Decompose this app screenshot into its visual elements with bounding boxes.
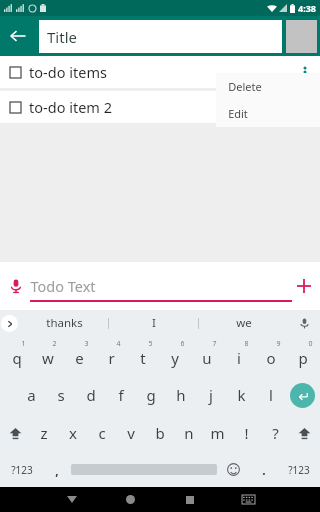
- button[interactable]: Voice input: [2, 272, 30, 300]
- button[interactable]: g: [136, 376, 166, 414]
- button[interactable]: Add todo: [290, 272, 318, 300]
- staticText: Todo Text: [30, 276, 96, 296]
- staticText: r: [108, 348, 115, 368]
- button[interactable]: !: [232, 414, 261, 452]
- staticText: e: [75, 348, 84, 368]
- staticText: ,: [55, 462, 59, 478]
- button[interactable]: I: [109, 310, 198, 336]
- button[interactable]: Title: [39, 20, 282, 53]
- button[interactable]: 2: [32, 336, 63, 376]
- button[interactable]: x: [58, 414, 87, 452]
- button[interactable]: Emoji: [217, 452, 249, 487]
- button[interactable]: k: [226, 376, 256, 414]
- staticText: q: [12, 348, 22, 368]
- staticText: 5: [148, 339, 153, 349]
- staticText: t: [140, 348, 146, 368]
- staticText: Delete: [228, 79, 262, 94]
- button[interactable]: Expand suggestions: [1, 315, 18, 332]
- button[interactable]: ?123: [1, 452, 42, 487]
- staticText: c: [98, 423, 106, 443]
- staticText: 0: [308, 339, 313, 349]
- staticText: b: [155, 423, 165, 443]
- button[interactable]: Shift: [290, 414, 319, 452]
- staticText: !: [244, 423, 249, 443]
- button[interactable]: Enter: [286, 376, 319, 414]
- staticText: we: [236, 315, 252, 331]
- button[interactable]: a: [16, 376, 46, 414]
- button[interactable]: we: [199, 310, 288, 336]
- button[interactable]: Space: [71, 452, 217, 487]
- button[interactable]: ?: [261, 414, 290, 452]
- button[interactable]: 4: [95, 336, 127, 376]
- button[interactable]: .: [249, 452, 278, 487]
- staticText: I: [152, 315, 156, 331]
- staticText: z: [40, 423, 48, 443]
- staticText: ?123: [288, 463, 310, 477]
- staticText: 3: [84, 339, 89, 349]
- button[interactable]: m: [203, 414, 232, 452]
- button[interactable]: d: [76, 376, 106, 414]
- button[interactable]: b: [145, 414, 174, 452]
- button[interactable]: 7: [191, 336, 223, 376]
- button[interactable]: 1: [1, 336, 32, 376]
- staticText: h: [176, 385, 186, 405]
- staticText: Title: [47, 27, 77, 47]
- button[interactable]: Back: [42, 487, 101, 512]
- staticText: u: [202, 348, 212, 368]
- button[interactable]: Recent apps: [160, 487, 219, 512]
- button[interactable]: thanks: [20, 310, 108, 336]
- staticText: ?: [272, 423, 279, 443]
- staticText: w: [42, 348, 54, 368]
- staticText: f: [118, 385, 124, 405]
- button[interactable]: h: [166, 376, 196, 414]
- staticText: 4: [116, 339, 121, 349]
- button[interactable]: c: [87, 414, 116, 452]
- staticText: 8: [244, 339, 249, 349]
- button[interactable]: Voice typing: [294, 313, 314, 333]
- button[interactable]: to-do item 2: [0, 91, 320, 123]
- button[interactable]: Delete: [216, 73, 320, 100]
- staticText: Edit: [228, 106, 248, 121]
- button[interactable]: ,: [42, 452, 71, 487]
- button[interactable]: z: [29, 414, 58, 452]
- staticText: to-do item 2: [29, 97, 112, 117]
- staticText: a: [27, 385, 36, 405]
- staticText: g: [146, 385, 156, 405]
- button[interactable]: Edit: [216, 100, 320, 127]
- staticText: l: [269, 385, 273, 405]
- button[interactable]: 8: [223, 336, 255, 376]
- button[interactable]: 9: [255, 336, 287, 376]
- staticText: s: [57, 385, 65, 405]
- staticText: to-do items: [29, 62, 107, 82]
- button[interactable]: Back: [0, 18, 36, 54]
- staticText: i: [237, 348, 241, 368]
- button[interactable]: j: [196, 376, 226, 414]
- button[interactable]: f: [106, 376, 136, 414]
- button[interactable]: Switch keyboard: [219, 487, 278, 512]
- staticText: o: [266, 348, 276, 368]
- button[interactable]: 5: [127, 336, 159, 376]
- staticText: v: [127, 423, 135, 443]
- button[interactable]: l: [256, 376, 286, 414]
- staticText: ?123: [11, 463, 33, 477]
- staticText: y: [171, 348, 179, 368]
- button[interactable]: s: [46, 376, 76, 414]
- button[interactable]: 6: [159, 336, 191, 376]
- button[interactable]: More options: [290, 57, 320, 87]
- button[interactable]: ?123: [278, 452, 319, 487]
- button[interactable]: n: [174, 414, 203, 452]
- staticText: 7: [212, 339, 217, 349]
- button[interactable]: 3: [63, 336, 95, 376]
- button[interactable]: Home: [101, 487, 160, 512]
- staticText: .: [262, 462, 266, 478]
- staticText: p: [298, 348, 308, 368]
- staticText: 2: [52, 339, 57, 349]
- staticText: 1: [21, 339, 26, 349]
- button[interactable]: Shift: [1, 414, 29, 452]
- button[interactable]: v: [116, 414, 145, 452]
- staticText: k: [237, 385, 246, 405]
- button[interactable]: 0: [287, 336, 319, 376]
- staticText: 9: [276, 339, 281, 349]
- button[interactable]: to-do items: [0, 56, 320, 88]
